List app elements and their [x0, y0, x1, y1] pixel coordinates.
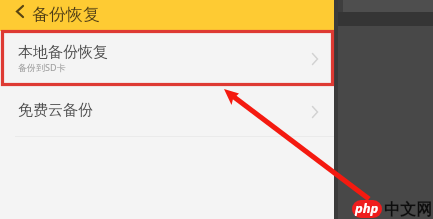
button[interactable]: 本地备份恢复 — [0, 31, 334, 84]
button[interactable]: Back — [8, 0, 32, 31]
staticText: 备份恢复 — [32, 4, 100, 25]
button[interactable]: 免费云备份 — [0, 85, 334, 136]
staticText: 备份到SD卡 — [18, 61, 66, 73]
staticText: 免费云备份 — [18, 101, 312, 120]
staticText: php — [355, 200, 379, 217]
staticText: 本地备份恢复 — [18, 43, 108, 62]
staticText: 中文网 — [384, 200, 432, 219]
